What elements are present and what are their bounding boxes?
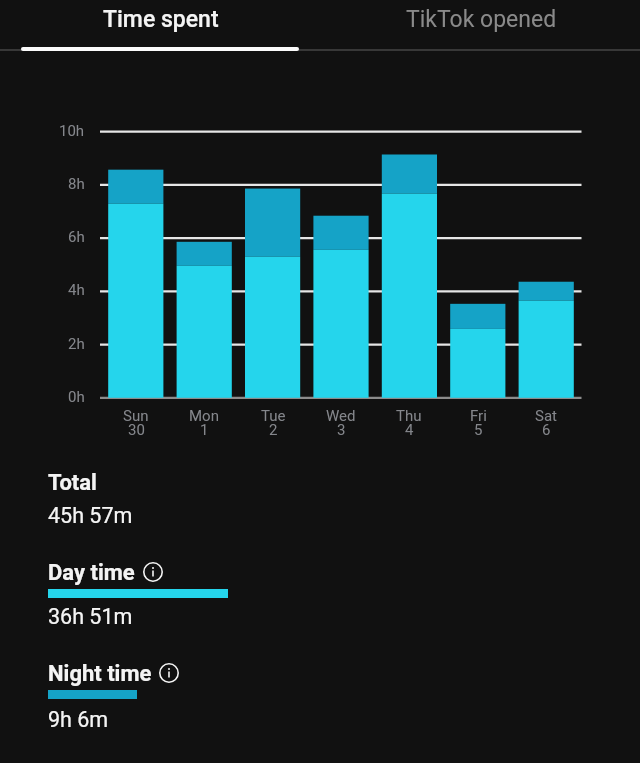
staticText: 6h [68, 228, 85, 246]
staticText: Tue [261, 407, 286, 425]
button[interactable]: About Night time [158, 662, 180, 684]
staticText: 4 [405, 421, 414, 439]
staticText: Sat [535, 407, 557, 425]
staticText: Night time [48, 661, 152, 687]
button[interactable]: About Day time [142, 561, 164, 583]
staticText: Time spent [103, 6, 219, 33]
staticText: Total [48, 470, 97, 496]
staticText: 0h [68, 388, 85, 406]
staticText: 2 [269, 421, 278, 439]
staticText: 4h [68, 281, 85, 299]
staticText: Wed [326, 407, 356, 425]
button[interactable]: Time spent [0, 0, 320, 49]
staticText: 2h [68, 335, 85, 353]
staticText: 3 [337, 421, 346, 439]
staticText: Mon [189, 407, 219, 425]
staticText: Sun [123, 407, 149, 425]
staticText: 8h [68, 175, 85, 193]
staticText: 1 [200, 421, 209, 439]
staticText: Day time [48, 560, 135, 586]
staticText: 9h 6m [48, 707, 109, 732]
staticText: Thu [396, 407, 422, 425]
staticText: 30 [128, 421, 145, 439]
staticText: 6 [542, 421, 551, 439]
staticText: 5 [474, 421, 483, 439]
staticText: TikTok opened [406, 6, 557, 33]
staticText: 10h [59, 122, 85, 140]
staticText: Fri [470, 407, 487, 425]
button[interactable]: TikTok opened [320, 0, 640, 49]
staticText: 45h 57m [48, 503, 133, 528]
staticText: 36h 51m [48, 604, 133, 629]
